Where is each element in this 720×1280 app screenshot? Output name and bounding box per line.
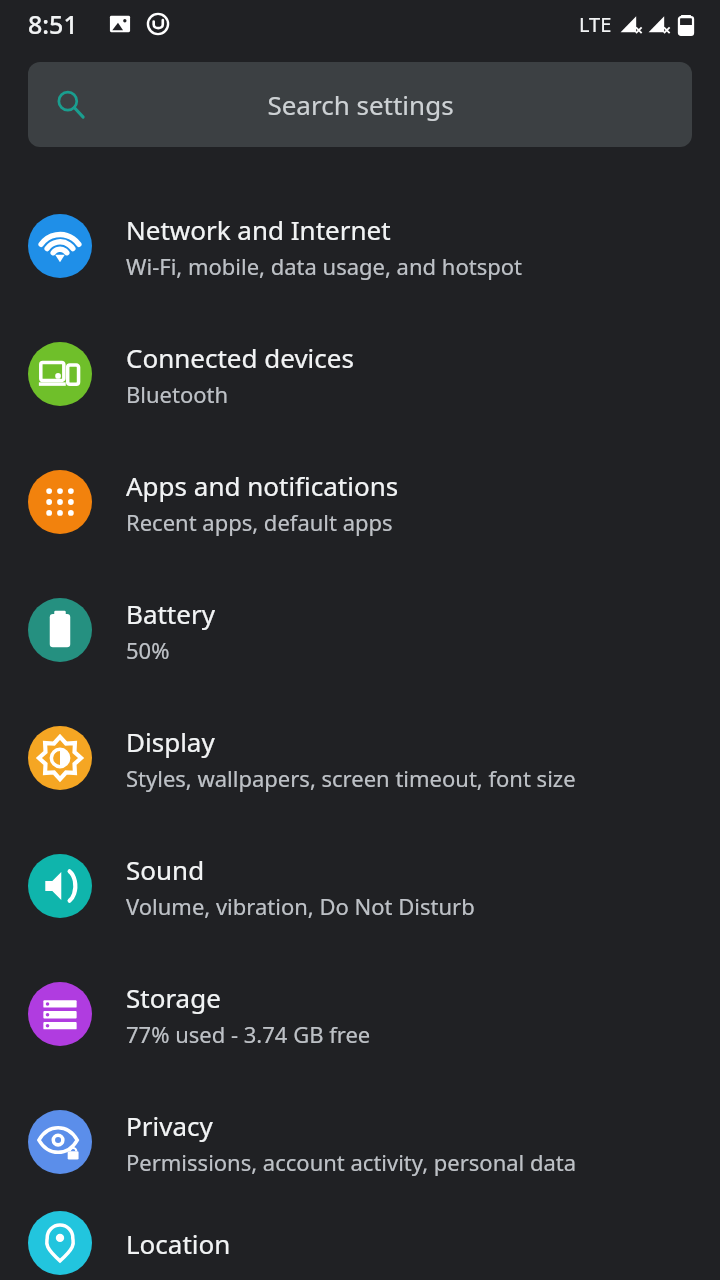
button[interactable]: Connected devices [0, 310, 720, 438]
button[interactable]: Display [0, 694, 720, 822]
staticText: 77% used - 3.74 GB free [126, 1019, 371, 1049]
staticText: Volume, vibration, Do Not Disturb [126, 891, 475, 921]
staticText: Recent apps, default apps [126, 507, 393, 537]
button[interactable]: Battery [0, 566, 720, 694]
staticText: Storage [126, 980, 221, 1015]
button[interactable]: Sound [0, 822, 720, 950]
button[interactable]: Storage [0, 950, 720, 1078]
button[interactable]: Location [0, 1206, 720, 1280]
staticText: Styles, wallpapers, screen timeout, font… [126, 763, 576, 793]
staticText: 8:51 [28, 7, 78, 41]
staticText: Permissions, account activity, personal … [126, 1147, 577, 1177]
staticText: Connected devices [126, 340, 354, 375]
button[interactable]: Network and Internet [0, 182, 720, 310]
button[interactable]: Privacy [0, 1078, 720, 1206]
staticText: Wi-Fi, mobile, data usage, and hotspot [126, 251, 522, 281]
staticText: Bluetooth [126, 379, 229, 409]
button[interactable]: Search settings [28, 62, 692, 147]
staticText: Privacy [126, 1108, 213, 1143]
staticText: 50% [126, 635, 170, 665]
staticText: Network and Internet [126, 212, 391, 247]
staticText: Sound [126, 852, 205, 887]
staticText: LTE [579, 11, 612, 38]
button[interactable]: Apps and notifications [0, 438, 720, 566]
staticText: Display [126, 724, 215, 759]
staticText: Location [126, 1226, 231, 1261]
staticText: Search settings [267, 87, 454, 122]
staticText: Battery [126, 596, 215, 631]
staticText: Apps and notifications [126, 468, 399, 503]
